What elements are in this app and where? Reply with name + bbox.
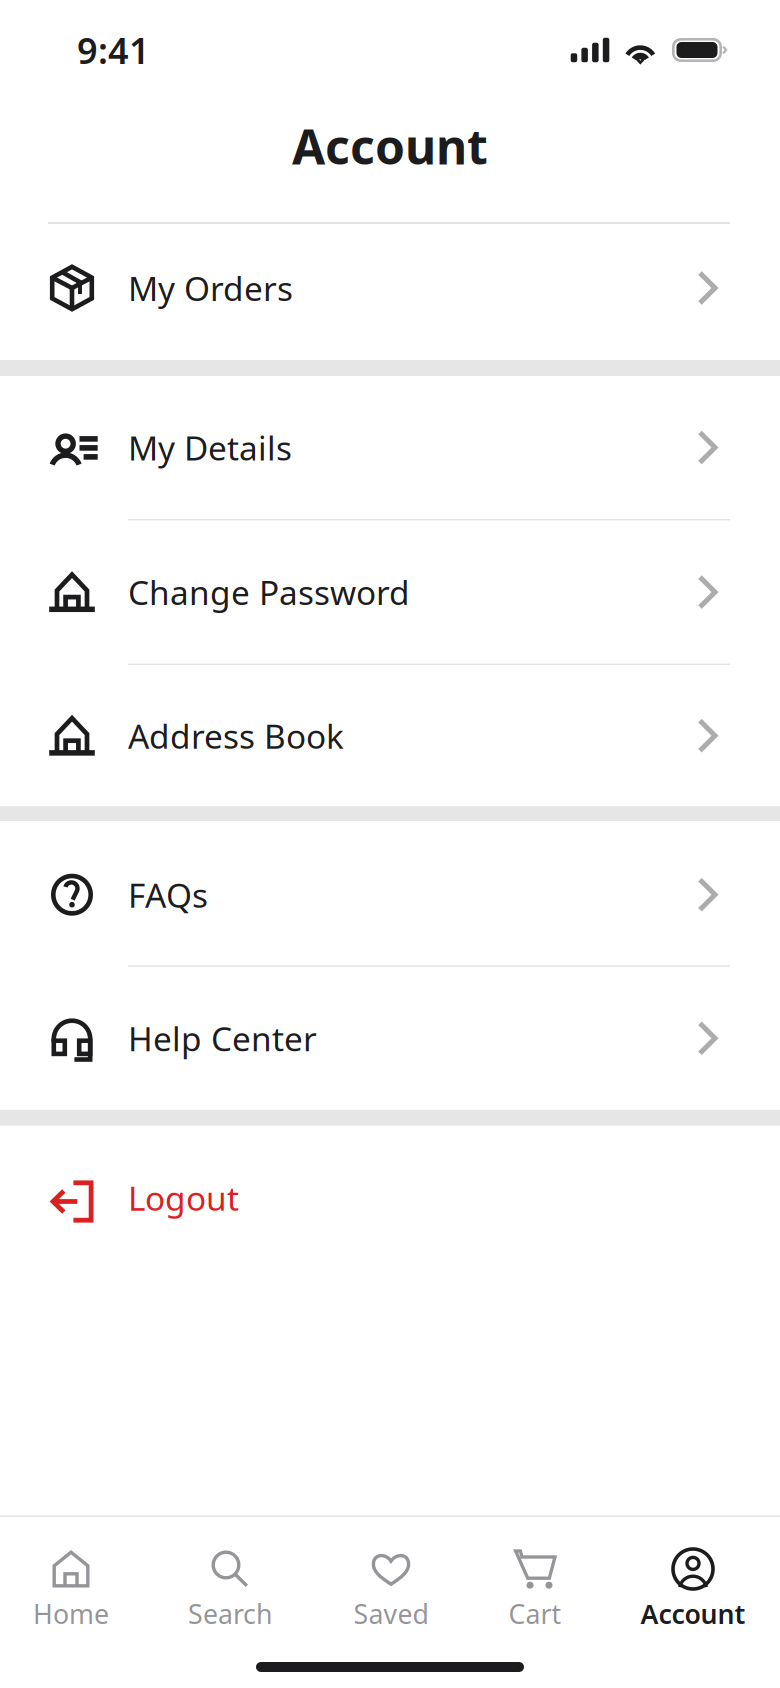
staticText: Home [33, 1596, 109, 1631]
staticText: Change Password [128, 570, 410, 614]
button[interactable]: Logout [0, 1126, 780, 1270]
button[interactable]: My Details [0, 376, 780, 519]
staticText: Help Center [128, 1016, 317, 1060]
staticText: Account [292, 114, 488, 178]
button[interactable]: Help Center [0, 967, 780, 1110]
button[interactable]: Account [624, 1517, 780, 1688]
staticText: Logout [128, 1176, 239, 1220]
staticText: My Orders [128, 266, 293, 310]
staticText: Saved [353, 1596, 428, 1631]
button[interactable]: Address Book [0, 665, 780, 806]
staticText: Search [188, 1596, 272, 1631]
button[interactable]: Home [0, 1517, 156, 1688]
button[interactable]: My Orders [0, 224, 780, 360]
staticText: Account [640, 1596, 745, 1631]
staticText: My Details [128, 425, 292, 470]
button[interactable]: Saved [312, 1517, 468, 1688]
button[interactable]: Cart [468, 1517, 624, 1688]
staticText: Cart [508, 1596, 561, 1631]
button[interactable]: FAQs [0, 821, 780, 965]
staticText: Address Book [128, 714, 344, 758]
button[interactable]: Change Password [0, 521, 780, 664]
staticText: 9:41 [77, 26, 150, 74]
staticText: FAQs [128, 873, 208, 917]
button[interactable]: Search [156, 1517, 312, 1688]
